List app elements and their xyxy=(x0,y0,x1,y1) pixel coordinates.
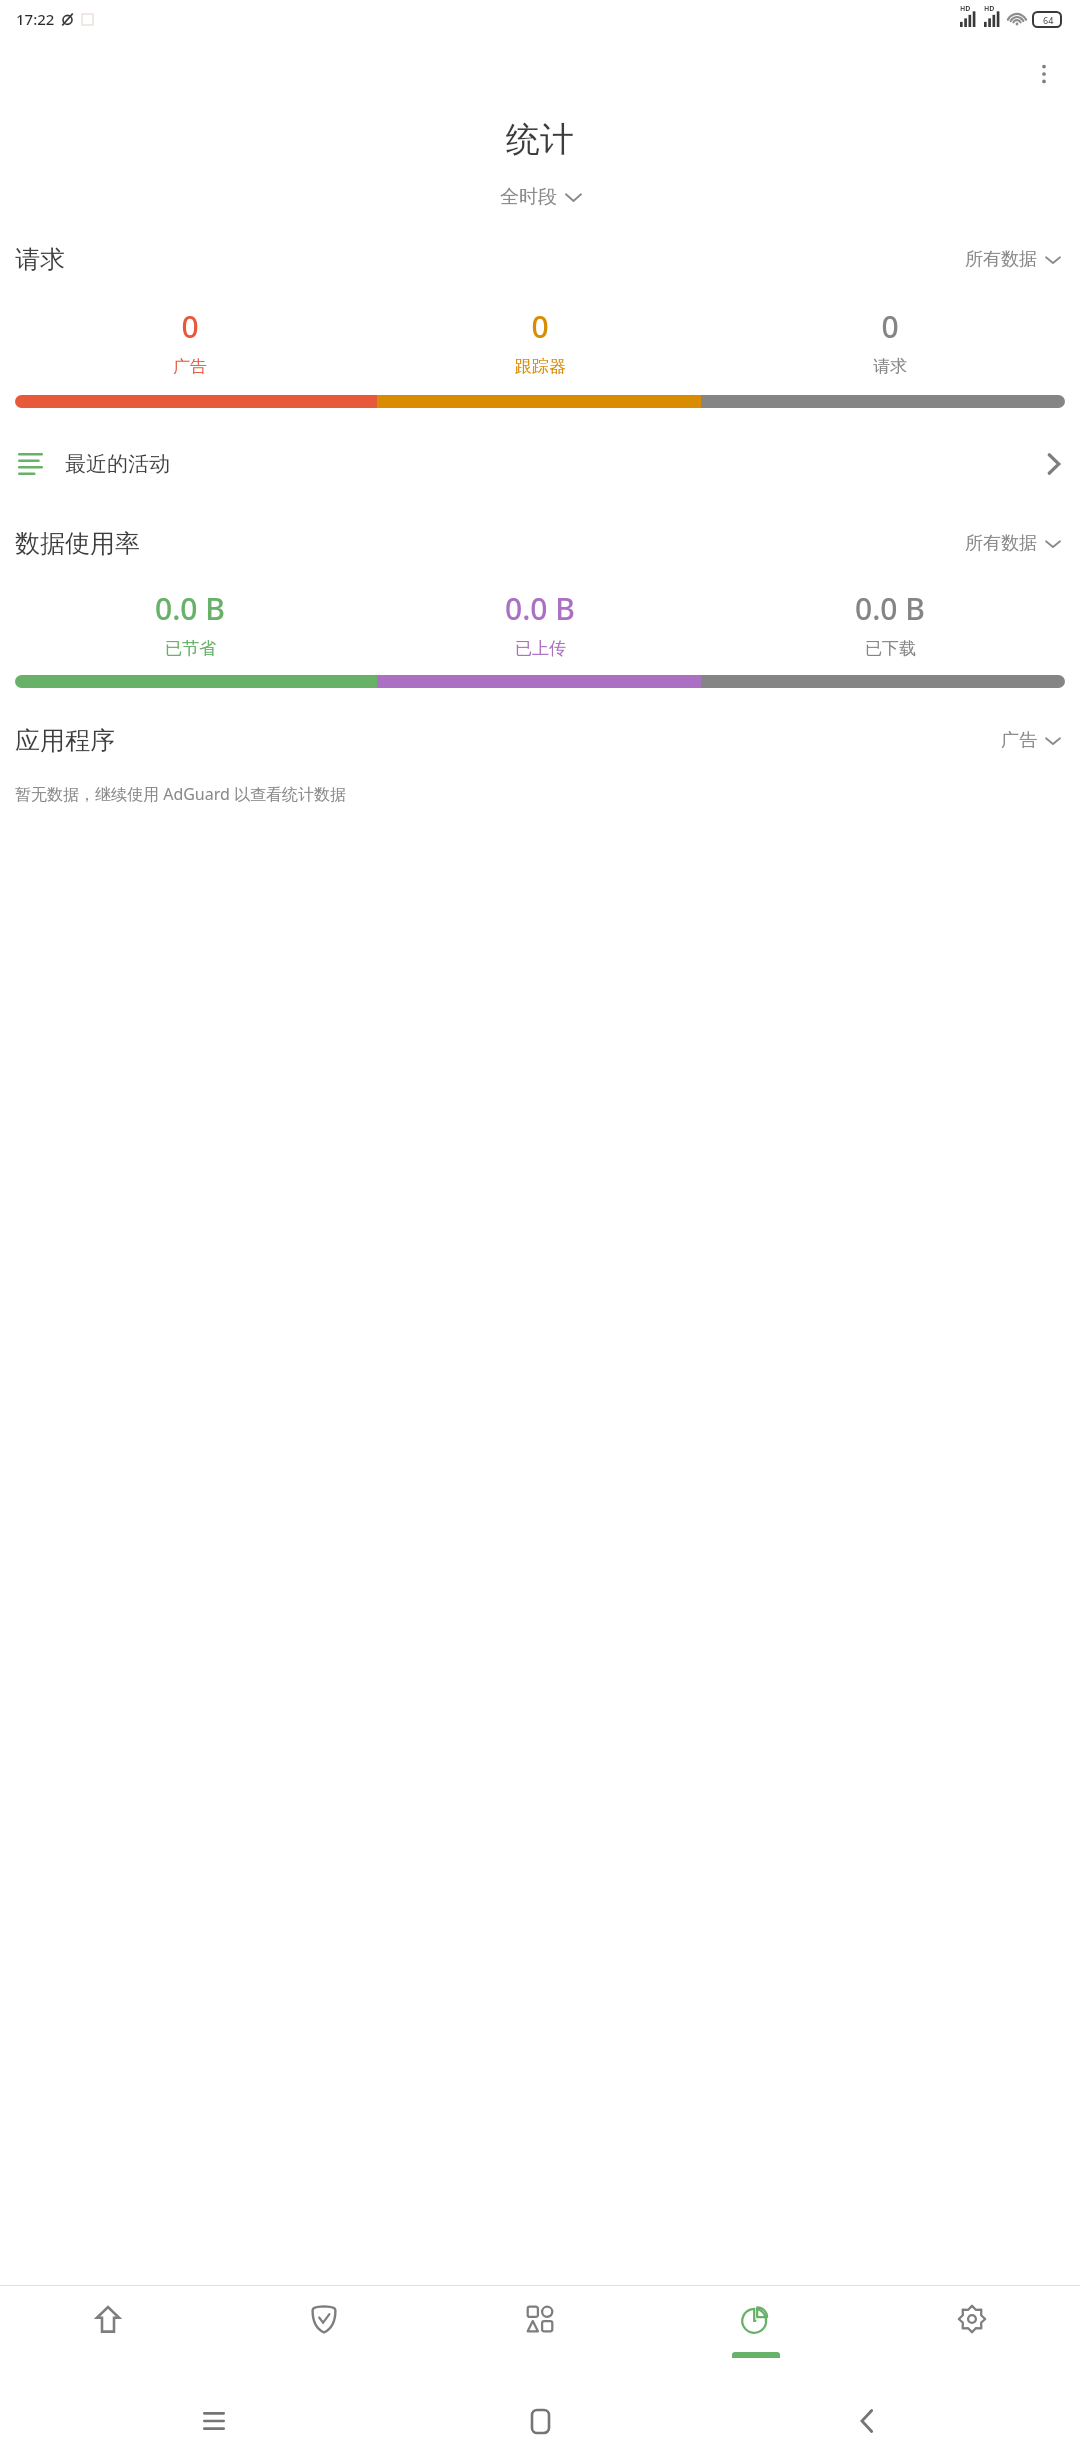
staticText: 64 xyxy=(1043,14,1054,26)
staticText: 已节省 xyxy=(165,638,216,659)
button[interactable]: 保护 xyxy=(216,2286,432,2382)
staticText: 0 xyxy=(531,306,549,347)
button[interactable]: 0 xyxy=(15,306,365,377)
staticText: 应用程序 xyxy=(15,725,115,756)
button[interactable]: 统计 xyxy=(648,2286,864,2382)
button[interactable]: 设置 xyxy=(864,2286,1080,2382)
button[interactable]: 0.0 B xyxy=(715,588,1065,659)
staticText: 所有数据 xyxy=(965,532,1037,555)
staticText: 0.0 B xyxy=(855,588,925,629)
button[interactable]: 所有数据 xyxy=(959,243,1066,276)
staticText: 跟踪器 xyxy=(515,356,566,377)
button[interactable]: 最近任务 xyxy=(186,2393,242,2449)
staticText: 全时段 xyxy=(500,185,557,209)
staticText: 请求 xyxy=(15,244,65,275)
button[interactable]: 更多选项 xyxy=(1022,52,1066,96)
button[interactable]: 0.0 B xyxy=(15,588,365,659)
staticText: HD xyxy=(984,4,995,14)
staticText: 已上传 xyxy=(515,638,566,659)
staticText: 已下载 xyxy=(865,638,916,659)
staticText: HD xyxy=(960,4,971,14)
staticText: 0.0 B xyxy=(155,588,225,629)
button[interactable]: 返回 xyxy=(838,2393,894,2449)
button[interactable]: 首页 xyxy=(0,2286,216,2382)
button[interactable]: 所有数据 xyxy=(959,527,1066,560)
staticText: 请求 xyxy=(873,356,907,377)
staticText: 广告 xyxy=(173,356,207,377)
button[interactable]: 广告 xyxy=(995,724,1066,757)
staticText: 数据使用率 xyxy=(15,528,140,559)
staticText: 所有数据 xyxy=(965,248,1037,271)
staticText: 广告 xyxy=(1001,729,1037,752)
staticText: 17:22 xyxy=(16,9,55,29)
button[interactable]: 0.0 B xyxy=(365,588,715,659)
staticText: 0 xyxy=(181,306,199,347)
button[interactable]: 应用 xyxy=(432,2286,648,2382)
button[interactable]: 主屏幕 xyxy=(512,2393,568,2449)
staticText: 0.0 B xyxy=(505,588,575,629)
staticText: 最近的活动 xyxy=(65,451,170,477)
button[interactable]: 0 xyxy=(365,306,715,377)
staticText: 暂无数据，继续使用 AdGuard 以查看统计数据 xyxy=(15,783,347,805)
button[interactable]: 最近的活动 xyxy=(0,441,1080,487)
button[interactable]: 全时段 xyxy=(492,181,589,213)
staticText: 统计 xyxy=(506,118,574,161)
button[interactable]: 0 xyxy=(715,306,1065,377)
staticText: 0 xyxy=(881,306,899,347)
